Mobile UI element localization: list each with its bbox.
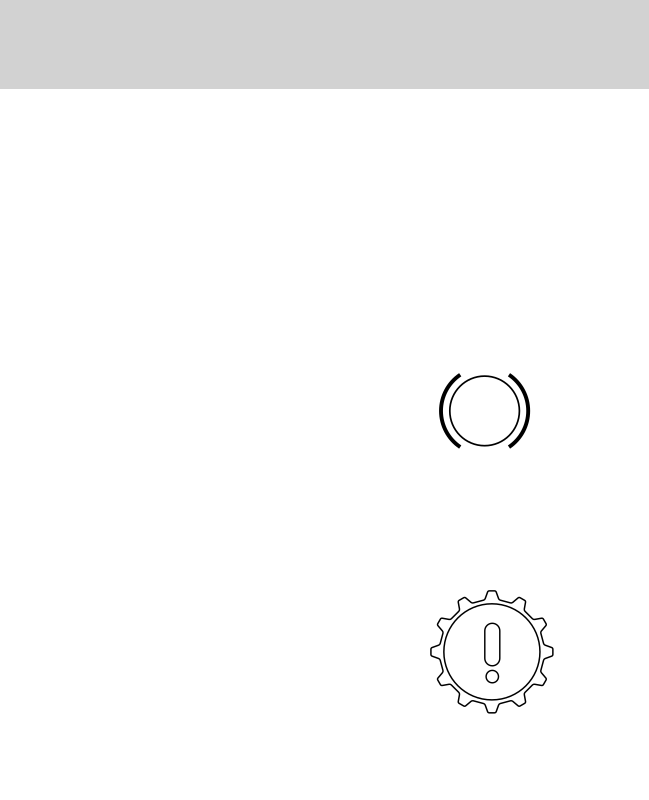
button[interactable]: Settings alert xyxy=(430,590,554,714)
button[interactable]: Dial xyxy=(439,365,531,457)
